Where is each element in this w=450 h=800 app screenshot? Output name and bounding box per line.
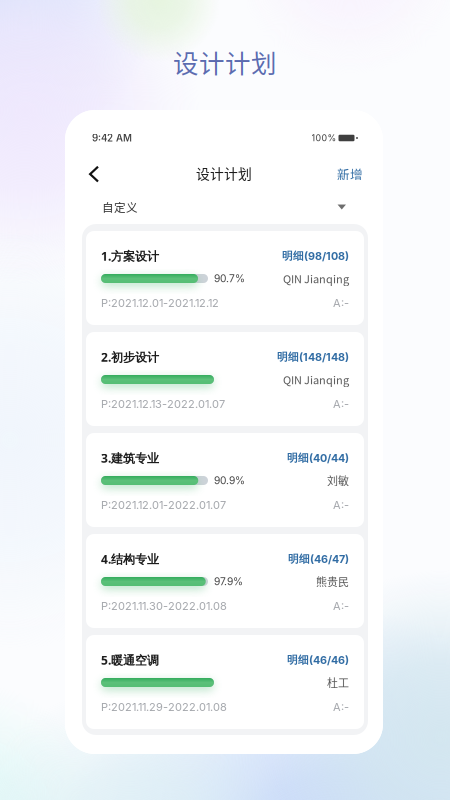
staticText: QIN Jianqing <box>283 270 349 286</box>
staticText: 90.9% <box>214 474 245 487</box>
staticText: 设计计划 <box>173 43 277 80</box>
button[interactable]: 1.方案设计 <box>86 231 364 325</box>
staticText: 自定义 <box>102 199 138 215</box>
staticText: 明细(46/46) <box>287 653 349 667</box>
staticText: A:- <box>333 397 349 411</box>
staticText: QIN Jianqing <box>283 371 349 387</box>
button[interactable]: 自定义 <box>102 195 346 219</box>
staticText: P:2021.12.13-2022.01.07 <box>101 397 225 411</box>
staticText: P:2021.11.30-2022.01.08 <box>101 599 227 613</box>
staticText: P:2021.12.01-2021.12.12 <box>101 296 219 310</box>
button[interactable]: Back <box>79 159 109 189</box>
staticText: 2.初步设计 <box>101 349 159 365</box>
staticText: 1.方案设计 <box>101 248 159 264</box>
staticText: 杜工 <box>327 674 349 690</box>
staticText: A:- <box>333 296 349 310</box>
staticText: 9:42 AM <box>92 132 132 144</box>
staticText: A:- <box>333 498 349 512</box>
staticText: A:- <box>333 700 349 714</box>
button[interactable]: 新增 <box>323 160 363 188</box>
staticText: 明细(98/108) <box>282 249 349 263</box>
staticText: A:- <box>333 599 349 613</box>
staticText: 明细(148/148) <box>277 350 349 364</box>
staticText: 5.暖通空调 <box>101 652 159 668</box>
button[interactable]: 2.初步设计 <box>86 332 364 426</box>
staticText: P:2021.11.29-2022.01.08 <box>101 700 227 714</box>
staticText: 3.建筑专业 <box>101 450 159 466</box>
staticText: 明细(40/44) <box>287 451 349 465</box>
staticText: 97.9% <box>214 575 243 588</box>
staticText: 90.7% <box>214 272 245 285</box>
staticText: 明细(46/47) <box>288 552 349 566</box>
staticText: 设计计划 <box>196 163 252 183</box>
staticText: P:2021.12.01-2022.01.07 <box>101 498 226 512</box>
button[interactable]: 3.建筑专业 <box>86 433 364 527</box>
staticText: 刘敏 <box>327 472 349 488</box>
button[interactable]: 4.结构专业 <box>86 534 364 628</box>
staticText: 100% <box>311 133 336 143</box>
button[interactable]: 5.暖通空调 <box>86 635 364 729</box>
staticText: 熊贵民 <box>316 573 349 589</box>
staticText: 4.结构专业 <box>101 551 159 567</box>
staticText: 新增 <box>337 165 363 183</box>
